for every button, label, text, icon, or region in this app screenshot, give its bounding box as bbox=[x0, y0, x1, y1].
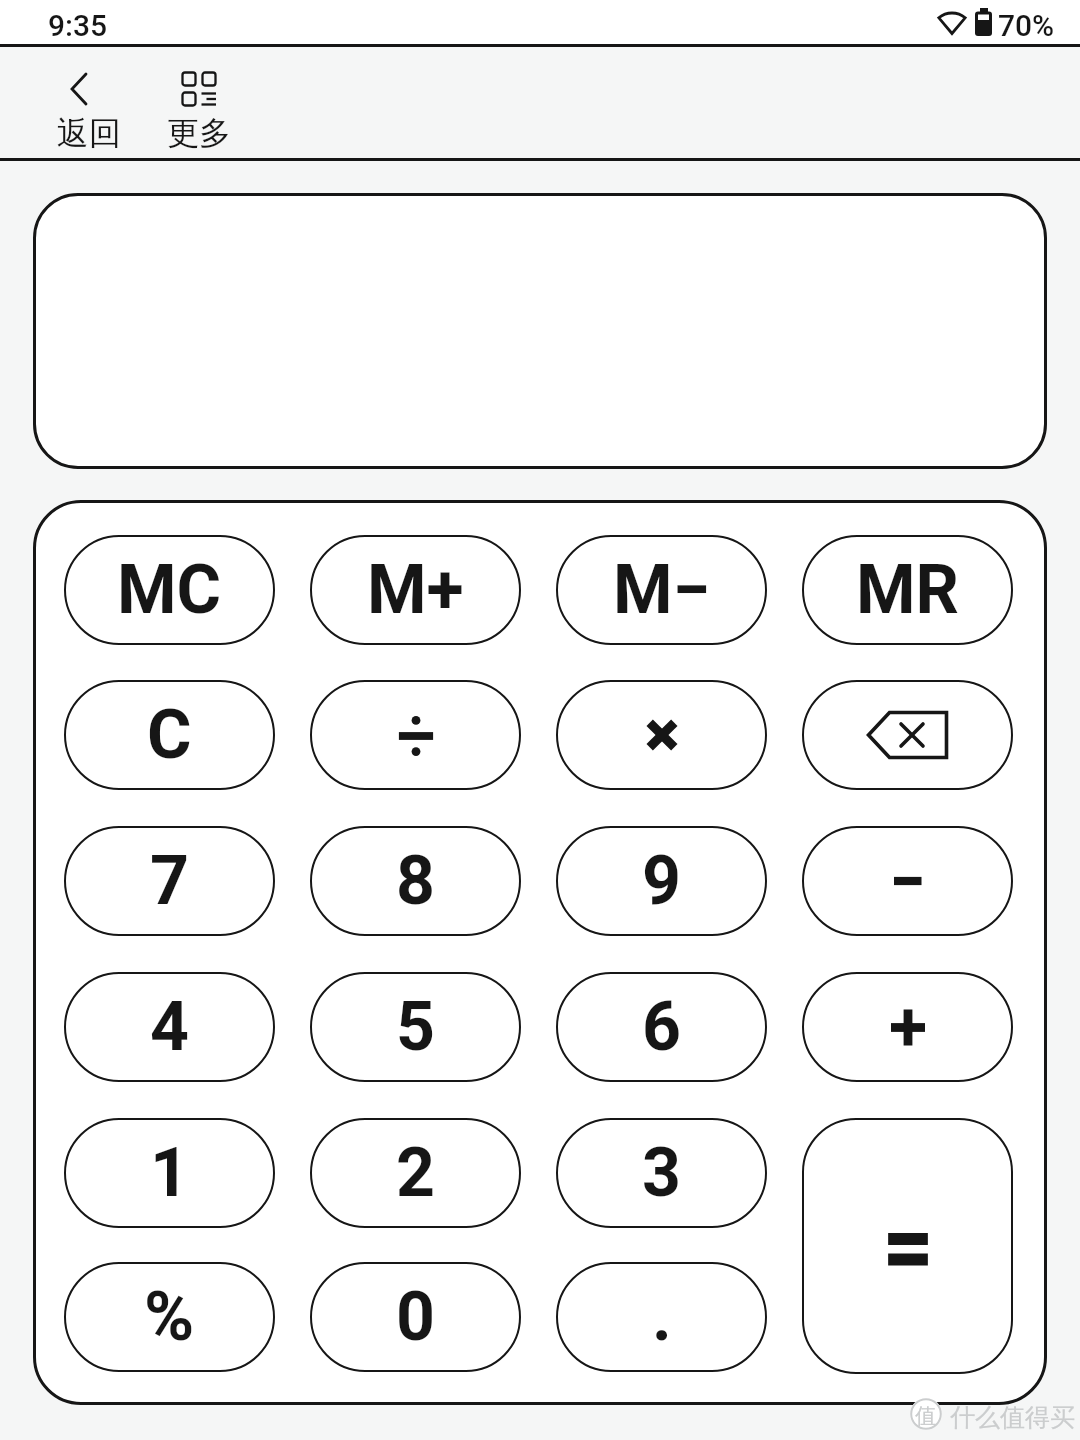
staticText: 什么值得买 bbox=[950, 1402, 1075, 1433]
button[interactable]: 更多 bbox=[156, 60, 242, 152]
staticText: 7 bbox=[150, 841, 190, 921]
staticText: . bbox=[652, 1277, 672, 1357]
button[interactable]: 9 bbox=[556, 826, 767, 936]
staticText: 9 bbox=[642, 841, 682, 921]
button[interactable] bbox=[310, 680, 521, 790]
staticText: 70% bbox=[998, 8, 1055, 43]
button[interactable] bbox=[802, 826, 1013, 936]
staticText: 1 bbox=[150, 1133, 190, 1213]
button[interactable]: 1 bbox=[64, 1118, 275, 1228]
staticText: 返回 bbox=[57, 113, 121, 153]
staticText: MR bbox=[856, 550, 959, 630]
button[interactable]: 4 bbox=[64, 972, 275, 1082]
button[interactable]: C bbox=[64, 680, 275, 790]
staticText: 3 bbox=[642, 1133, 682, 1213]
staticText: 6 bbox=[642, 987, 682, 1067]
button[interactable]: . bbox=[556, 1262, 767, 1372]
staticText: 更多 bbox=[167, 113, 231, 153]
button[interactable] bbox=[802, 972, 1013, 1082]
button[interactable]: 返回 bbox=[40, 60, 136, 152]
staticText: M− bbox=[613, 550, 711, 630]
staticText: 值 bbox=[915, 1403, 936, 1429]
staticText: M+ bbox=[367, 550, 464, 630]
button[interactable]: 6 bbox=[556, 972, 767, 1082]
staticText: 8 bbox=[396, 841, 436, 921]
button[interactable]: 7 bbox=[64, 826, 275, 936]
button[interactable]: 8 bbox=[310, 826, 521, 936]
staticText: 2 bbox=[396, 1133, 436, 1213]
staticText: 5 bbox=[396, 987, 436, 1067]
button[interactable]: M+ bbox=[310, 535, 521, 645]
button[interactable]: 3 bbox=[556, 1118, 767, 1228]
button[interactable]: 5 bbox=[310, 972, 521, 1082]
button[interactable] bbox=[802, 1118, 1013, 1374]
staticText: % bbox=[144, 1277, 195, 1357]
staticText: 4 bbox=[150, 987, 190, 1067]
button[interactable]: 0 bbox=[310, 1262, 521, 1372]
staticText: 0 bbox=[396, 1277, 436, 1357]
button[interactable]: MC bbox=[64, 535, 275, 645]
button[interactable]: 2 bbox=[310, 1118, 521, 1228]
button[interactable] bbox=[556, 680, 767, 790]
button[interactable]: MR bbox=[802, 535, 1013, 645]
button[interactable]: % bbox=[64, 1262, 275, 1372]
staticText: 9:35 bbox=[48, 8, 108, 43]
button[interactable] bbox=[802, 680, 1013, 790]
staticText: MC bbox=[117, 550, 222, 630]
staticText: C bbox=[147, 695, 192, 775]
button[interactable]: M− bbox=[556, 535, 767, 645]
